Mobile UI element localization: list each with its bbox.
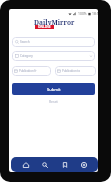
staticText: Publication fr bbox=[19, 69, 37, 73]
staticText: Search bbox=[20, 40, 30, 44]
button[interactable]: Search bbox=[37, 158, 53, 172]
button[interactable]: Home bbox=[18, 158, 34, 172]
button[interactable]: Bookmarks bbox=[57, 158, 73, 172]
staticText: DailyMirror bbox=[34, 18, 75, 27]
button[interactable]: Publication to bbox=[55, 66, 96, 76]
staticText: Reset bbox=[49, 99, 58, 104]
button[interactable]: Publication fr bbox=[12, 66, 51, 76]
staticText: 18:16 bbox=[92, 11, 98, 16]
staticText: Publication to bbox=[62, 69, 81, 73]
button[interactable]: Category bbox=[12, 51, 95, 61]
button[interactable]: Search bbox=[12, 37, 95, 47]
button[interactable]: Reset bbox=[48, 98, 59, 105]
staticText: 100% bbox=[78, 11, 87, 16]
staticText: ONLINE bbox=[38, 25, 51, 29]
button[interactable]: Settings bbox=[76, 158, 92, 172]
staticText: Category bbox=[20, 54, 33, 58]
staticText: Submit bbox=[47, 87, 61, 92]
button[interactable]: Submit bbox=[12, 83, 95, 95]
